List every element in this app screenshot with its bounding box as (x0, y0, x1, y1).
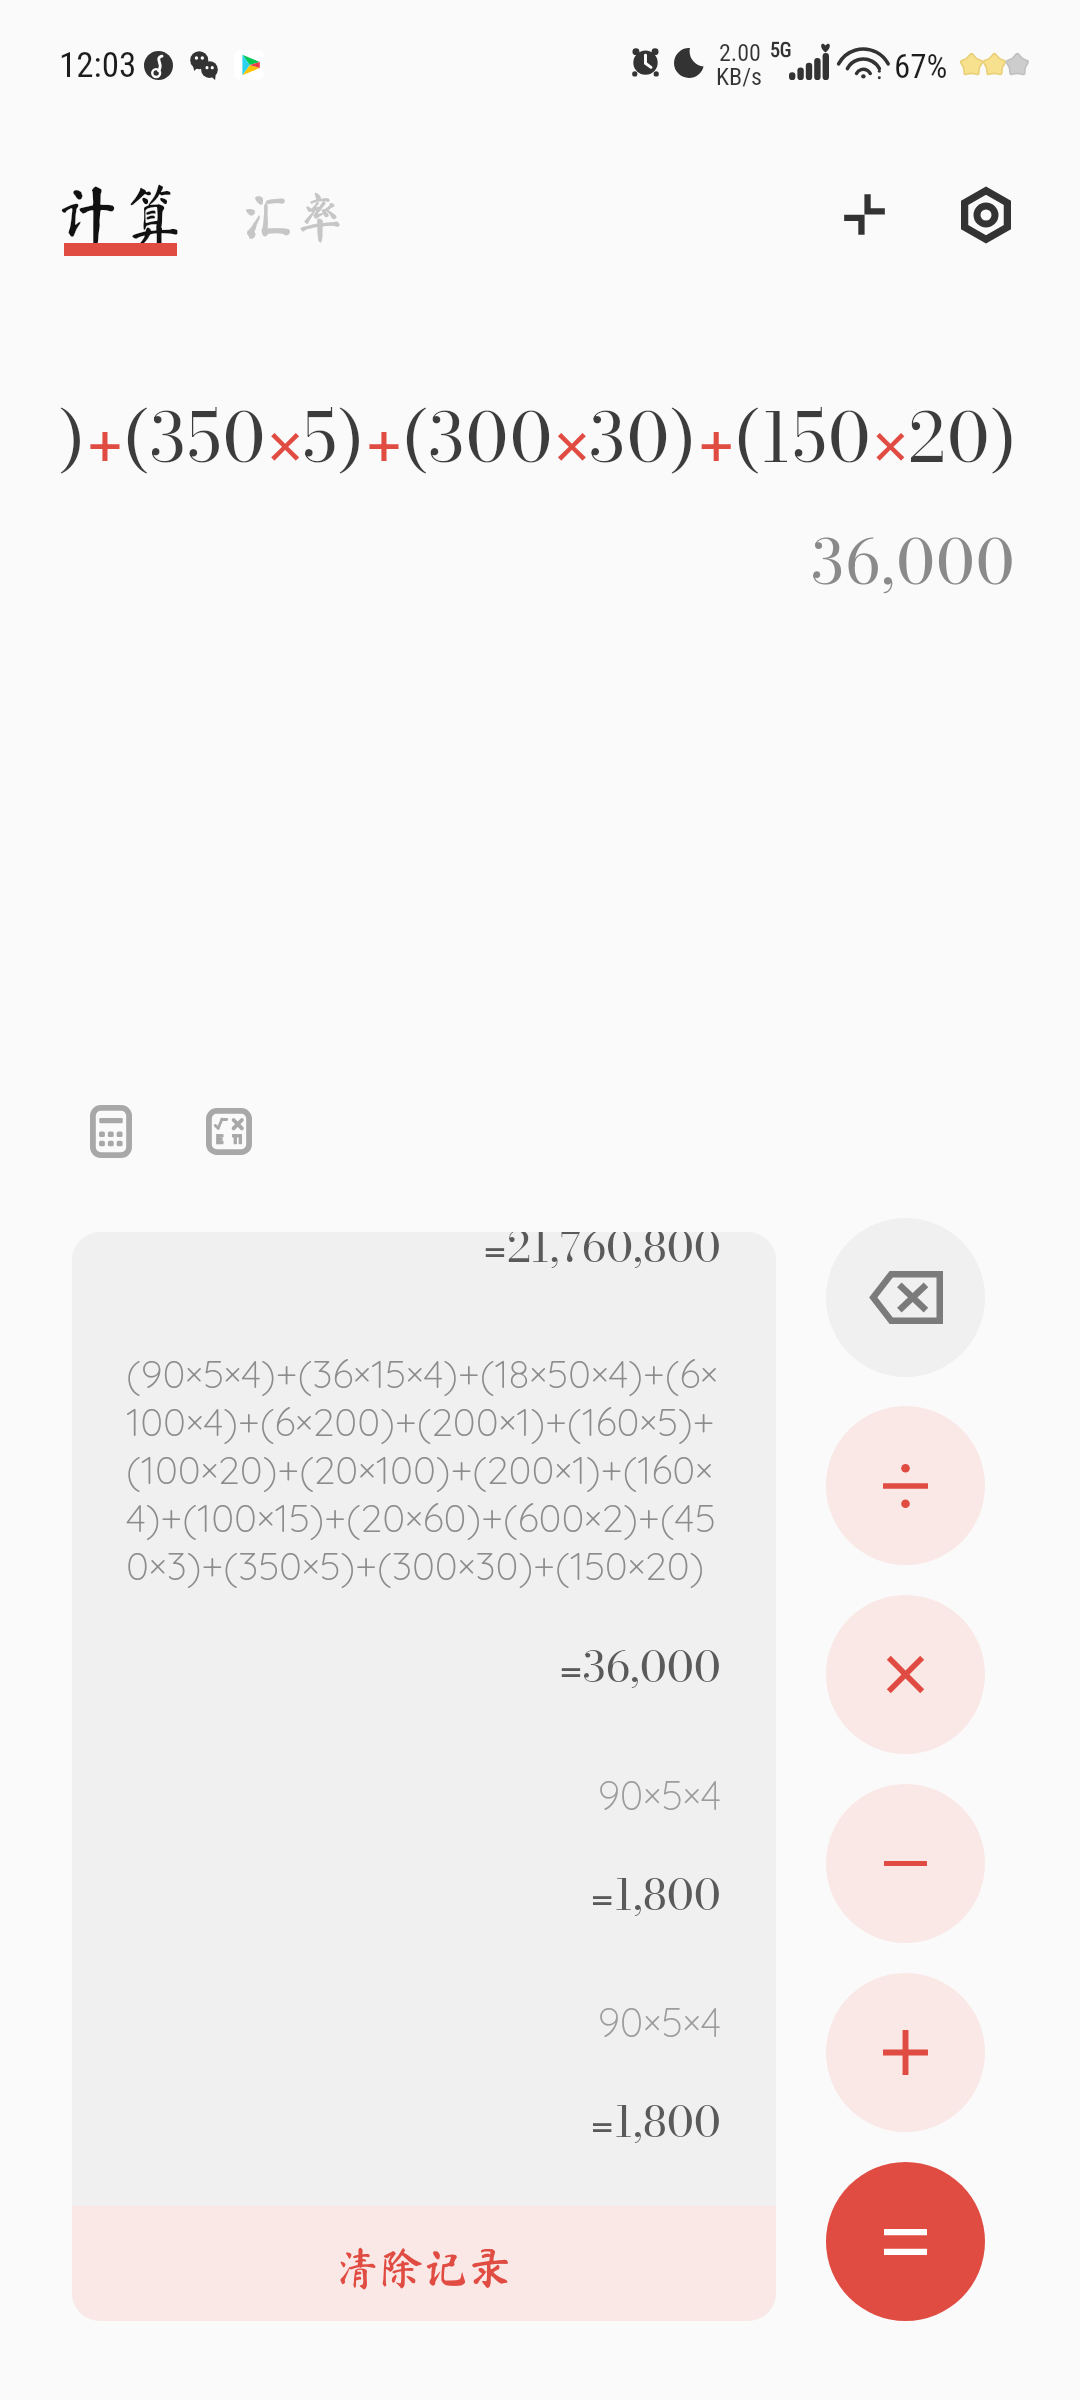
staticText: 计算 (55, 182, 187, 248)
button[interactable]: 汇率 (232, 168, 350, 268)
button[interactable]: Settings (940, 169, 1031, 260)
staticText: =1,800 (72, 1862, 721, 1928)
staticText: 2.00 (719, 39, 761, 67)
staticText: =21,760,800 (72, 1232, 721, 1280)
button[interactable]: Subtract (826, 1784, 985, 1943)
button[interactable]: Standard calculator (75, 1090, 146, 1172)
staticText: (90×5×4)+(36×15×4)+(18×50×4)+(6×100×4)+(… (126, 1349, 726, 1590)
button[interactable]: Collapse keyboard (819, 169, 910, 260)
staticText: 36,000 (0, 515, 1016, 608)
staticText: =36,000 (72, 1634, 721, 1700)
button[interactable]: Multiply (826, 1595, 985, 1754)
staticText: )+(350×5)+(300×30)+(150×20) (60, 387, 1019, 489)
button[interactable]: Scientific calculator (193, 1095, 264, 1167)
button[interactable]: Divide (826, 1406, 985, 1565)
staticText: 清除记录 (336, 2245, 512, 2289)
button[interactable]: 计算 (46, 168, 194, 268)
staticText: KB/s (716, 63, 763, 91)
button[interactable]: Equals (826, 2162, 985, 2321)
staticText: 90×5×4 (72, 1770, 721, 1820)
button[interactable]: Add (826, 1973, 985, 2132)
staticText: 汇率 (242, 190, 347, 242)
staticText: 12:03 (59, 45, 137, 86)
button[interactable]: Backspace (826, 1218, 985, 1377)
staticText: =1,800 (72, 2089, 721, 2155)
staticText: 5G (770, 38, 792, 61)
staticText: 67% (894, 47, 948, 86)
staticText: 90×5×4 (72, 1997, 721, 2047)
button[interactable]: 清除记录 (72, 2206, 776, 2321)
